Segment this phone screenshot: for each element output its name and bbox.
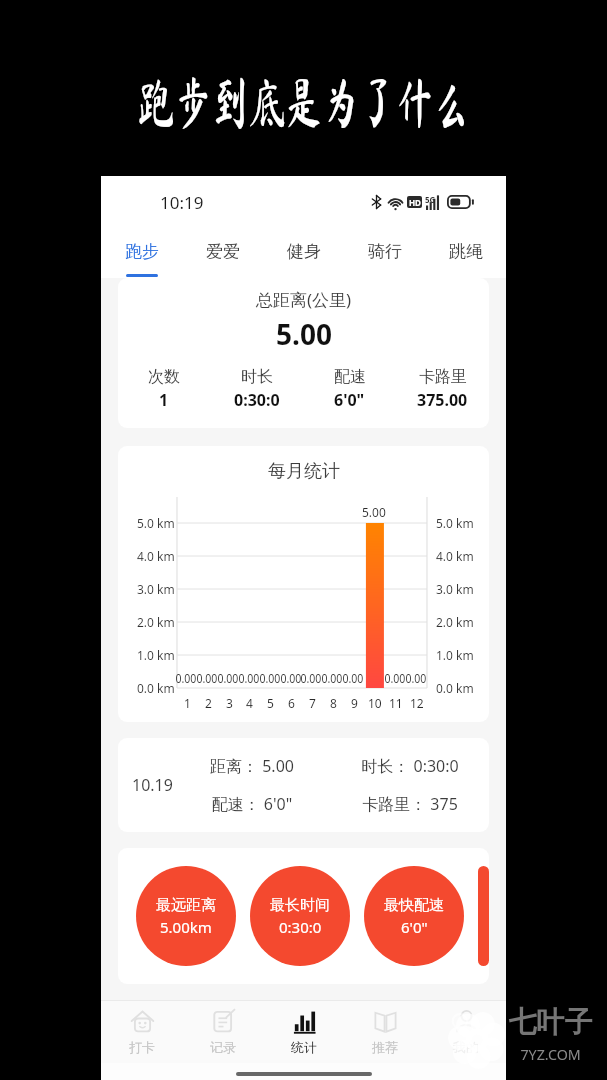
staticText: 2 (205, 695, 212, 711)
staticText: 配速： 6'0" (173, 793, 331, 815)
staticText: 骑行 (368, 241, 402, 262)
button[interactable]: 最远距离 (136, 866, 236, 966)
staticText: 跑步到底是为了什么 (138, 74, 470, 130)
staticText: 4 (246, 695, 253, 711)
staticText: 七叶子 (509, 1004, 592, 1041)
staticText: 0.00 (384, 670, 405, 686)
staticText: 5.0 km (436, 515, 474, 531)
staticText: 0.00 (300, 670, 321, 686)
staticText: 0.00 (238, 670, 259, 686)
button[interactable]: 健身 (263, 223, 344, 278)
staticText: 11 (389, 695, 403, 711)
staticText: 我的 (453, 1039, 479, 1055)
staticText: 8 (330, 695, 337, 711)
button[interactable]: 统计 (263, 1001, 344, 1063)
staticText: 0:30:0 (234, 389, 280, 411)
staticText: 5.00km (160, 917, 212, 937)
staticText: 2.0 km (436, 614, 474, 630)
staticText: 10 (368, 695, 382, 711)
other: Site watermark (447, 1010, 507, 1070)
staticText: 0.00 (259, 670, 280, 686)
staticText: 1 (184, 695, 191, 711)
button[interactable]: 打卡 (101, 1001, 182, 1063)
staticText: 统计 (291, 1039, 317, 1055)
staticText: 跳绳 (449, 241, 483, 262)
staticText: 1.0 km (137, 647, 175, 663)
staticText: 最远距离 (156, 896, 216, 915)
staticText: 记录 (210, 1039, 236, 1055)
staticText: 卡路里： 375 (331, 793, 489, 815)
staticText: 0.0 km (436, 680, 474, 696)
staticText: 跑步 (125, 241, 159, 262)
button[interactable] (478, 866, 489, 966)
button[interactable]: 爱爱 (182, 223, 263, 278)
staticText: 距离： 5.00 (173, 755, 331, 777)
staticText: 时长： 0:30:0 (331, 755, 489, 777)
button[interactable]: 推荐 (344, 1001, 425, 1063)
staticText: 0.00 (342, 670, 363, 686)
staticText: 375.00 (417, 389, 468, 411)
staticText: 推荐 (372, 1039, 398, 1055)
staticText: 配速 (334, 367, 366, 387)
staticText: 10.19 (132, 774, 173, 796)
staticText: 1 (159, 389, 169, 411)
staticText: 9 (351, 695, 358, 711)
button[interactable]: 最快配速 (364, 866, 464, 966)
button[interactable]: 骑行 (344, 223, 425, 278)
staticText: 5G (425, 194, 436, 205)
staticText: 卡路里 (419, 367, 467, 387)
staticText: 0.00 (196, 670, 217, 686)
staticText: 0:30:0 (279, 917, 322, 937)
staticText: 4.0 km (137, 548, 175, 564)
button[interactable]: 记录 (182, 1001, 263, 1063)
staticText: 最长时间 (270, 896, 330, 915)
staticText: 5 (267, 695, 274, 711)
staticText: 5.00 (276, 315, 332, 353)
staticText: 0.0 km (137, 680, 175, 696)
staticText: 6'0" (401, 917, 428, 937)
staticText: 2.0 km (137, 614, 175, 630)
button[interactable]: 最长时间 (250, 866, 350, 966)
staticText: 健身 (287, 241, 321, 262)
staticText: 10:19 (160, 191, 204, 214)
staticText: 0.00 (175, 670, 196, 686)
staticText: 4.0 km (436, 548, 474, 564)
staticText: 3 (226, 695, 233, 711)
staticText: 7YZ.COM (520, 1045, 582, 1064)
staticText: 12 (410, 695, 424, 711)
staticText: 6 (288, 695, 295, 711)
staticText: 0.00 (321, 670, 342, 686)
staticText: 3.0 km (436, 581, 474, 597)
staticText: 爱爱 (206, 241, 240, 262)
staticText: 3.0 km (137, 581, 175, 597)
staticText: 总距离(公里) (256, 288, 352, 311)
staticText: 5.0 km (137, 515, 175, 531)
staticText: HD (409, 197, 421, 208)
staticText: 次数 (148, 367, 180, 387)
staticText: 打卡 (129, 1039, 155, 1055)
staticText: 0.00 (405, 670, 426, 686)
staticText: 最快配速 (384, 896, 444, 915)
staticText: 0.00 (280, 670, 301, 686)
staticText: 5.00 (362, 504, 386, 520)
staticText: 每月统计 (268, 460, 340, 483)
staticText: 时长 (241, 367, 273, 387)
staticText: 7 (309, 695, 316, 711)
staticText: 1.0 km (436, 647, 474, 663)
staticText: 0.00 (217, 670, 238, 686)
button[interactable]: 跳绳 (425, 223, 506, 278)
button[interactable]: 跑步 (101, 223, 182, 278)
staticText: 6'0" (334, 389, 365, 411)
